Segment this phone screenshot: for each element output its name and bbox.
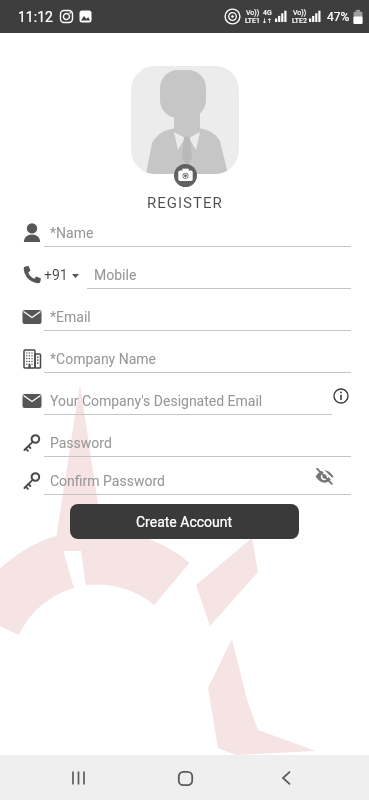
staticText: Vo)) xyxy=(293,9,307,17)
staticText: LTE2 xyxy=(292,17,307,25)
staticText: *Name xyxy=(50,225,94,241)
staticText: Confirm Password xyxy=(50,473,165,489)
staticText: Password xyxy=(50,435,112,451)
staticText: Create Account xyxy=(136,514,233,530)
button[interactable]: +91 xyxy=(0,262,369,304)
button[interactable]: Confirm Password xyxy=(0,468,369,495)
button[interactable]: Password xyxy=(0,430,369,468)
staticText: +91 xyxy=(44,267,68,283)
staticText: 11:12 xyxy=(18,9,53,25)
staticText: *Company Name xyxy=(50,351,157,367)
button[interactable]: Create Account xyxy=(70,504,299,539)
staticText: *Email xyxy=(50,309,91,325)
staticText: REGISTER xyxy=(147,194,223,212)
staticText: 4G xyxy=(263,9,272,17)
button[interactable] xyxy=(131,66,239,174)
button[interactable] xyxy=(269,761,303,795)
button[interactable] xyxy=(62,761,96,795)
button[interactable]: *Email xyxy=(0,304,369,346)
button[interactable] xyxy=(174,164,197,187)
button[interactable]: *Name xyxy=(0,220,369,262)
staticText: Your Company's Designated Email xyxy=(50,393,263,409)
button[interactable] xyxy=(168,761,202,795)
staticText: Mobile xyxy=(94,267,137,283)
staticText: LTE1 xyxy=(245,17,260,25)
staticText: Vo)) xyxy=(246,9,260,17)
button[interactable]: *Company Name xyxy=(0,346,369,388)
staticText: ↓↑ xyxy=(262,17,273,24)
button[interactable]: Your Company's Designated Email xyxy=(0,388,369,430)
staticText: 47% xyxy=(327,10,350,24)
